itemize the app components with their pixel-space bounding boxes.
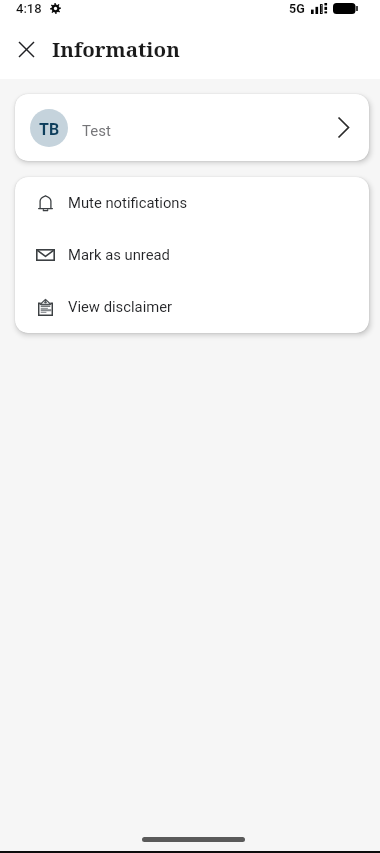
staticText: Mark as unread [68,246,170,263]
staticText: Mute notifications [68,194,188,211]
button[interactable]: Close [7,30,45,68]
button[interactable]: TB [15,94,369,161]
button[interactable]: Mark as unread [15,229,369,281]
staticText: TB [39,120,60,139]
button[interactable]: View disclaimer [15,281,369,333]
staticText: Information [52,35,180,63]
staticText: 5G [289,1,305,16]
staticText: Test [82,122,111,140]
staticText: View disclaimer [68,298,173,315]
staticText: 4:18 [16,1,42,16]
button[interactable]: Mute notifications [15,177,369,229]
